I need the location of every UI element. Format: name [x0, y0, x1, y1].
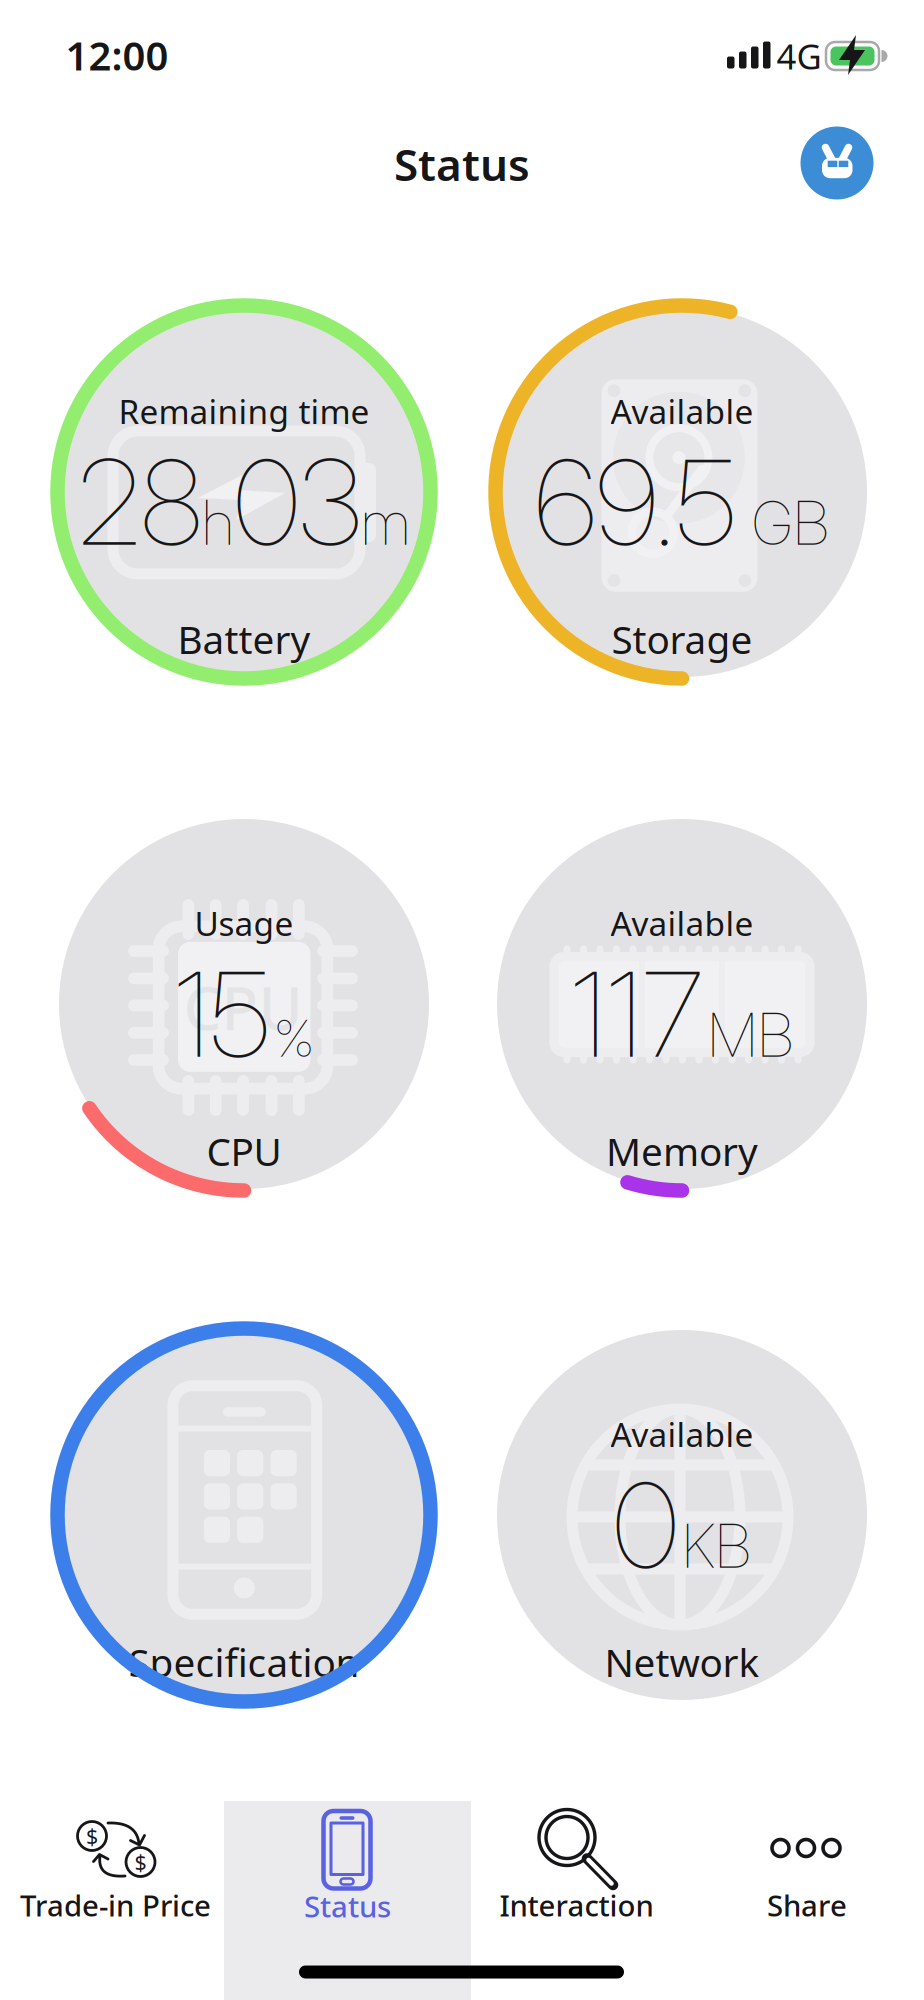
staticText: 69.5 [535, 431, 736, 573]
button[interactable]: $ [0, 1801, 231, 2000]
staticText: 28 [78, 431, 202, 573]
button[interactable]: Share [693, 1801, 924, 2000]
staticText: GB [752, 487, 829, 559]
staticText: Specification [128, 1636, 359, 1688]
staticText: % [274, 1008, 314, 1069]
staticText: m [361, 485, 410, 559]
button[interactable]: Remaining time [44, 292, 444, 692]
staticText: Available [610, 389, 753, 433]
staticText: $ [86, 1822, 98, 1850]
staticText: Interaction [499, 1885, 653, 1924]
button[interactable]: Status [224, 1801, 471, 2000]
staticText: 12:00 [65, 28, 168, 81]
button[interactable]: CPU [44, 804, 444, 1204]
staticText: 03 [234, 431, 361, 573]
staticText: 0 [613, 1454, 678, 1596]
staticText: Status [394, 135, 530, 193]
button[interactable]: Assistant [800, 126, 873, 199]
staticText: CPU [206, 1125, 281, 1177]
staticText: Trade-in Price [20, 1885, 211, 1924]
staticText: h [202, 485, 234, 559]
button[interactable]: Available [482, 292, 882, 692]
staticText: $ [134, 1848, 146, 1876]
staticText: Battery [177, 613, 310, 665]
staticText: 15 [174, 943, 270, 1085]
button[interactable]: Available [482, 1315, 882, 1715]
button[interactable]: Specification [44, 1315, 444, 1715]
button[interactable]: Interaction [462, 1801, 693, 2000]
staticText: MB [707, 999, 793, 1071]
staticText: 117 [570, 943, 703, 1085]
staticText: 4G [776, 33, 821, 79]
staticText: Available [610, 901, 753, 945]
button[interactable]: Available [482, 804, 882, 1204]
staticText: Usage [194, 901, 293, 945]
staticText: Status [304, 1886, 391, 1925]
staticText: Storage [611, 613, 752, 665]
staticText: Network [604, 1636, 759, 1688]
staticText: CPU [183, 967, 302, 1047]
staticText: KB [682, 1510, 751, 1582]
staticText: Share [767, 1885, 847, 1924]
staticText: Memory [606, 1125, 758, 1177]
staticText: Remaining time [118, 389, 369, 433]
staticText: Available [610, 1412, 753, 1456]
